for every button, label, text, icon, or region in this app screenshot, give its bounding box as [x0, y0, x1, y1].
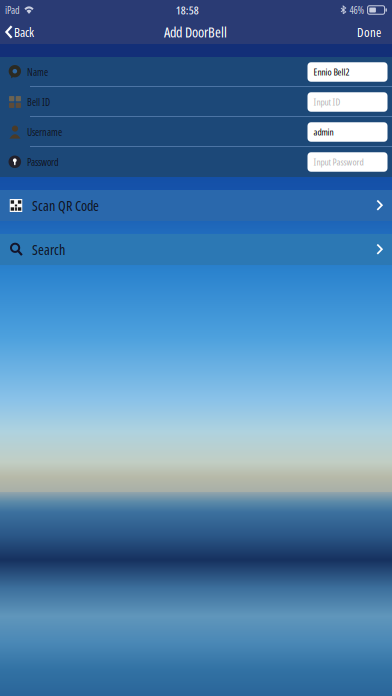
- staticText: Ennio Bell2: [313, 66, 349, 78]
- staticText: 18:58: [176, 2, 199, 18]
- staticText: Password: [27, 155, 59, 169]
- staticText: Input Password: [313, 156, 363, 168]
- staticText: Back: [14, 23, 34, 41]
- staticText: Bell ID: [27, 95, 50, 109]
- button[interactable]: Ennio Bell2: [307, 62, 387, 82]
- staticText: 46%: [349, 3, 364, 17]
- staticText: Name: [27, 65, 48, 79]
- button[interactable]: admin: [307, 122, 387, 142]
- button[interactable]: Input Password: [307, 152, 387, 172]
- staticText: Search: [32, 240, 65, 259]
- staticText: admin: [313, 126, 333, 138]
- button[interactable]: Input ID: [307, 92, 387, 112]
- staticText: iPad: [5, 3, 20, 17]
- button[interactable]: Search: [0, 234, 392, 265]
- button[interactable]: Done: [357, 20, 392, 44]
- staticText: Done: [357, 23, 381, 41]
- staticText: Scan QR Code: [32, 196, 99, 215]
- staticText: Add DoorBell: [164, 22, 227, 42]
- button[interactable]: Back: [0, 20, 34, 44]
- staticText: Username: [27, 125, 62, 139]
- button[interactable]: Scan QR Code: [0, 190, 392, 221]
- staticText: Input ID: [313, 96, 340, 108]
